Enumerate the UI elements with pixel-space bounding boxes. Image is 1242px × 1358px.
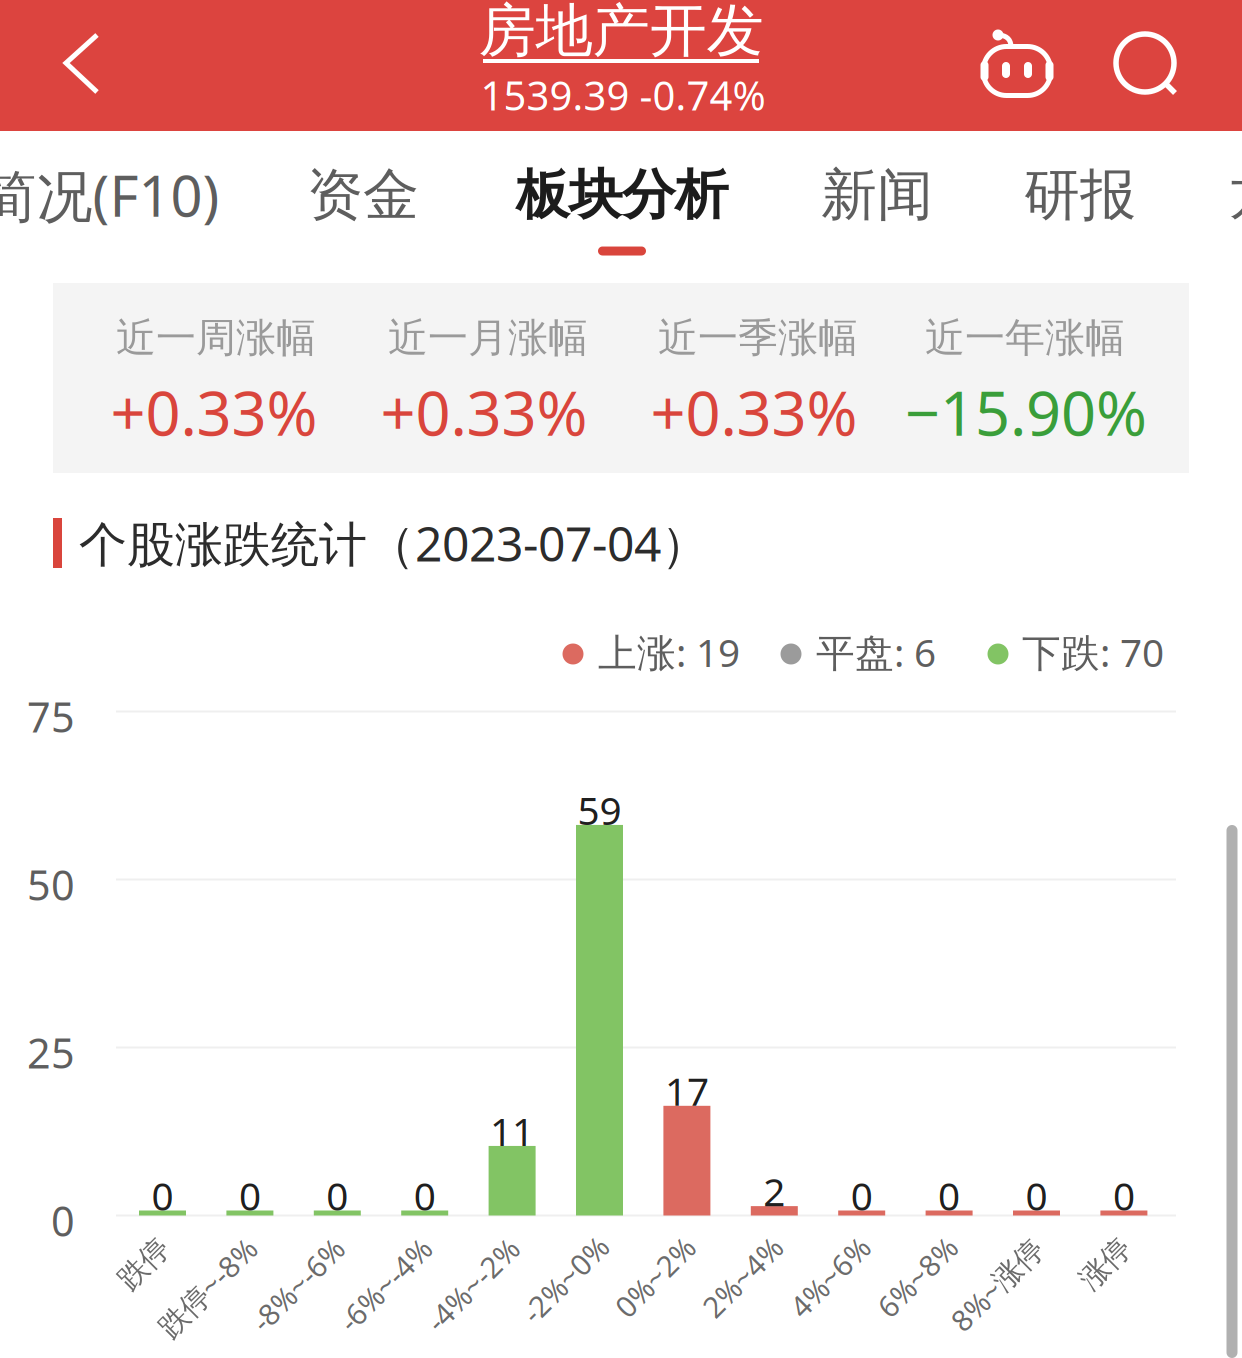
staticText: 上涨: 19 xyxy=(598,626,740,678)
staticText: 近一周涨幅 xyxy=(116,313,316,362)
staticText: 1539.39 -0.74% xyxy=(480,68,765,121)
staticText: 8%~涨停 xyxy=(939,1265,1055,1304)
button[interactable]: 研报 xyxy=(965,134,1195,258)
staticText: 近一年涨幅 xyxy=(925,313,1125,362)
staticText: +0.33% xyxy=(110,371,317,453)
staticText: 简况(F10) xyxy=(0,158,219,232)
staticText: 0 xyxy=(151,1170,173,1221)
staticText: 房地产开发 xyxy=(478,0,763,66)
staticText: 0%~2% xyxy=(605,1257,704,1296)
staticText: 0 xyxy=(51,1193,75,1248)
button[interactable]: 龙虎榜 xyxy=(1198,134,1242,258)
staticText: 涨停 xyxy=(1076,1246,1134,1282)
staticText: 板块分析 xyxy=(516,162,728,228)
staticText: 下跌: 70 xyxy=(1022,626,1164,678)
staticText: 4%~6% xyxy=(780,1257,879,1296)
staticText: 0 xyxy=(326,1170,348,1221)
staticText: +0.33% xyxy=(380,371,587,453)
staticText: -4%~-2% xyxy=(414,1265,531,1304)
staticText: -2%~0% xyxy=(511,1260,619,1299)
staticText: 2 xyxy=(763,1165,785,1217)
staticText: 新闻 xyxy=(821,161,933,229)
staticText: 0 xyxy=(1113,1170,1135,1221)
staticText: 17 xyxy=(665,1065,709,1116)
staticText: 研报 xyxy=(1024,161,1136,229)
staticText: 近一季涨幅 xyxy=(658,313,858,362)
staticText: 平盘: 6 xyxy=(816,626,936,678)
staticText: 75 xyxy=(27,689,75,744)
staticText: 0 xyxy=(414,1170,436,1221)
staticText: 0 xyxy=(851,1170,873,1221)
staticText: 近一月涨幅 xyxy=(388,313,588,362)
staticText: 0 xyxy=(1025,1170,1047,1221)
staticText: −15.90% xyxy=(905,371,1147,453)
staticText: 2%~4% xyxy=(693,1257,792,1296)
button[interactable]: Back xyxy=(7,0,157,129)
staticText: 50 xyxy=(27,857,75,912)
button[interactable]: 简况(F10) xyxy=(0,134,215,258)
staticText: 跌停~-8% xyxy=(145,1268,270,1307)
staticText: 6%~8% xyxy=(868,1257,967,1296)
button[interactable]: AI assistant xyxy=(962,1,1072,111)
button[interactable]: 资金 xyxy=(248,134,478,258)
staticText: 59 xyxy=(577,784,621,836)
staticText: 0 xyxy=(239,1170,261,1221)
staticText: -6%~-4% xyxy=(326,1265,443,1304)
staticText: 25 xyxy=(27,1025,75,1080)
button[interactable]: Search xyxy=(1096,14,1206,124)
staticText: 跌停 xyxy=(115,1246,173,1282)
staticText: 资金 xyxy=(307,161,419,229)
staticText: 个股涨跌统计（2023-07-04） xyxy=(79,511,709,575)
staticText: 龙虎榜 xyxy=(1229,161,1242,229)
staticText: -8%~-6% xyxy=(239,1265,356,1304)
staticText: 0 xyxy=(938,1170,960,1221)
button[interactable]: 板块分析 xyxy=(507,134,737,258)
staticText: 11 xyxy=(490,1105,534,1157)
staticText: +0.33% xyxy=(650,371,857,453)
button[interactable]: 新闻 xyxy=(762,134,992,258)
